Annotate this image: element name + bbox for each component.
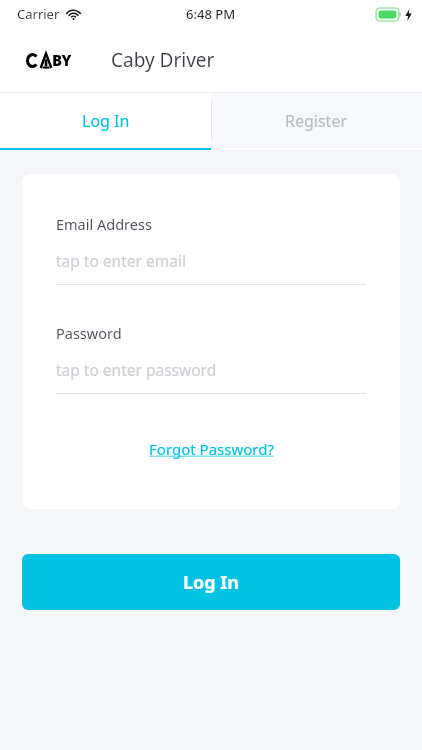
staticText: 6:48 PM: [186, 5, 236, 23]
button[interactable]: tap to enter password: [56, 359, 366, 394]
button[interactable]: Register: [211, 93, 422, 148]
staticText: Carrier: [17, 5, 60, 23]
staticText: tap to enter password: [56, 359, 217, 380]
button[interactable]: tap to enter email: [56, 250, 366, 285]
staticText: BY: [52, 50, 72, 70]
staticText: Caby Driver: [111, 47, 215, 73]
staticText: Register: [285, 110, 348, 132]
staticText: Email Address: [56, 214, 152, 234]
staticText: Password: [56, 323, 122, 343]
staticText: Log In: [82, 110, 130, 132]
staticText: tap to enter email: [56, 250, 186, 271]
button[interactable]: Log In: [0, 93, 211, 148]
button[interactable]: Forgot Password?: [149, 439, 274, 459]
button[interactable]: Log In: [22, 554, 400, 610]
staticText: Log In: [183, 570, 240, 595]
staticText: Forgot Password?: [149, 439, 274, 459]
